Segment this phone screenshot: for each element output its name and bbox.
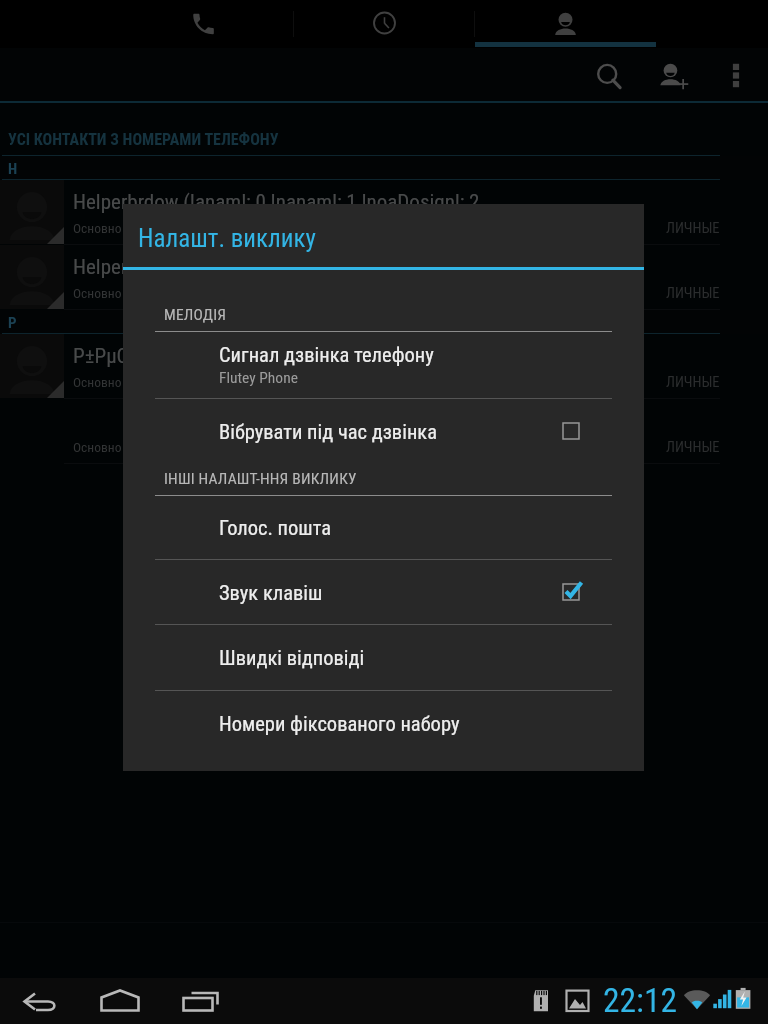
staticText: Основно [73,439,122,455]
staticText: Номери фіксованого набору [219,712,460,736]
staticText: Швидкі відповіді [219,646,365,670]
staticText: ЛИЧНЫЕ [666,220,720,237]
staticText: Основно [73,220,122,236]
button[interactable]: Основно [0,399,768,464]
button[interactable]: Голос. пошта [123,495,644,560]
button[interactable]: Call log tab [294,0,475,48]
staticText: Налашт. виклику [138,224,317,253]
button[interactable]: Dialer tab [113,0,294,48]
button[interactable]: Номери фіксованого набору [123,691,644,756]
staticText: Основно [73,374,122,390]
staticText: УСІ КОНТАКТИ З НОМЕРАМИ ТЕЛЕФОНУ [8,130,279,149]
button[interactable]: More options [714,48,758,103]
button[interactable]: Search [580,48,630,103]
staticText: ЛИЧНЫЕ [666,439,720,456]
button[interactable]: Вібрувати під час дзвінка [123,399,644,464]
button[interactable]: Helperbrdow (!anam!; 0 !nanam!; 1 !noaDo… [0,180,768,245]
staticText: ІНШІ НАЛАШТ-ННЯ ВИКЛИКУ [164,470,357,488]
button[interactable]: Add contact [648,48,700,103]
staticText: Helperbrdow (!anam!; 0 !nanam!; 1 !noaDo… [73,190,480,215]
staticText: Helper [73,255,128,280]
staticText: Голос. пошта [219,516,332,540]
staticText: Н [8,160,18,178]
button[interactable]: Helper [0,245,768,310]
staticText: Р [8,314,17,332]
button[interactable]: Home [88,978,152,1024]
staticText: Вібрувати під час дзвінка [219,420,437,444]
staticText: Основно [73,285,122,301]
staticText: ЛИЧНЫЕ [666,285,720,302]
staticText: Р±РµСЃРЅР°СЏ РіСЂР°РєР°РЅРЅР° РїСЂРёРІРµ… [73,344,608,369]
staticText: Flutey Phone [219,369,298,387]
button[interactable]: Recent apps [168,978,232,1024]
button[interactable]: Back [8,978,72,1024]
button[interactable]: Р±РµСЃРЅР°СЏ РіСЂР°РєР°РЅРЅР° РїСЂРёРІРµ… [0,334,768,399]
button[interactable]: Швидкі відповіді [123,625,644,691]
staticText: Сигнал дзвінка телефону [219,343,434,367]
staticText: МЕЛОДІЯ [164,306,227,324]
staticText: 22:12 [603,981,677,1020]
button[interactable]: Сигнал дзвінка телефону [123,331,644,399]
button[interactable]: Contacts tab [475,0,656,48]
staticText: ЛИЧНЫЕ [666,374,720,391]
staticText: Звук клавіш [219,581,323,605]
button[interactable]: Звук клавіш [123,560,644,625]
